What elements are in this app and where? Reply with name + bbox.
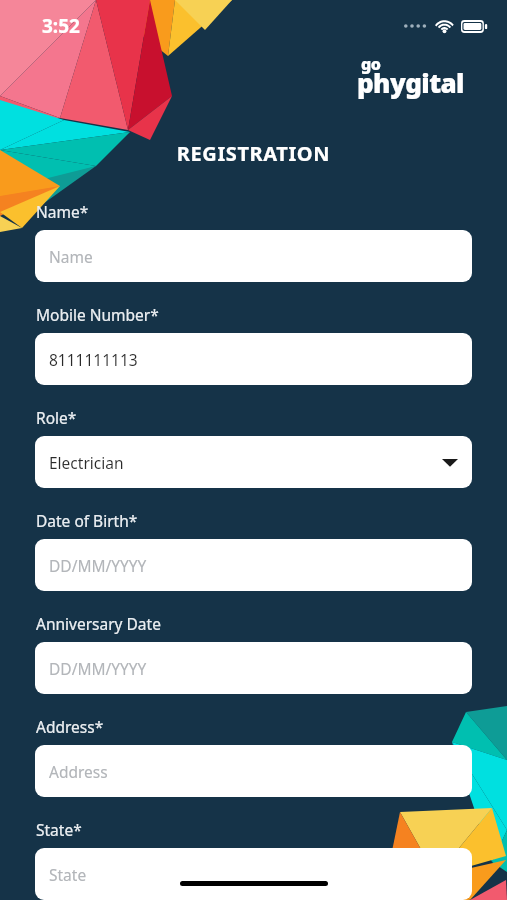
staticText: Address xyxy=(49,761,108,782)
staticText: REGISTRATION xyxy=(0,140,507,167)
staticText: go xyxy=(361,53,381,75)
staticText: Name xyxy=(49,246,93,267)
button[interactable]: DD/MM/YYYY xyxy=(35,642,472,694)
staticText: DD/MM/YYYY xyxy=(49,555,147,576)
staticText: Electrician xyxy=(49,452,124,473)
button[interactable]: Name xyxy=(35,230,472,282)
button[interactable]: 8111111113 xyxy=(35,333,472,385)
staticText: Date of Birth* xyxy=(36,510,138,531)
staticText: Role* xyxy=(36,407,77,428)
button[interactable]: State xyxy=(35,848,472,900)
button[interactable]: Electrician xyxy=(35,436,472,488)
staticText: Name* xyxy=(36,201,89,222)
staticText: DD/MM/YYYY xyxy=(49,658,147,679)
staticText: phygital xyxy=(357,65,464,100)
staticText: Address* xyxy=(36,716,104,737)
staticText: State* xyxy=(36,819,82,840)
staticText: 3:52 xyxy=(42,13,80,39)
staticText: 8111111113 xyxy=(49,349,138,370)
staticText: State xyxy=(49,864,87,885)
staticText: Anniversary Date xyxy=(36,613,161,634)
button[interactable]: DD/MM/YYYY xyxy=(35,539,472,591)
button[interactable]: Address xyxy=(35,745,472,797)
button[interactable]: go phygital logo xyxy=(357,52,487,104)
staticText: Mobile Number* xyxy=(36,304,159,325)
